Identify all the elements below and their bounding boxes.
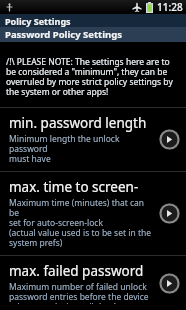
button[interactable]: Policy Settings bbox=[0, 14, 186, 27]
staticText: /!\ PLEASE NOTE: The settings here are t… bbox=[6, 56, 181, 98]
button[interactable]: Open max. time to screen-lock setting bbox=[159, 203, 180, 224]
staticText: Minimum length the unlock password must … bbox=[9, 133, 155, 165]
button[interactable]: Open min. password length setting bbox=[159, 129, 180, 150]
button[interactable]: max. failed password attempts bbox=[0, 256, 186, 310]
staticText: min. password length bbox=[9, 114, 147, 132]
staticText: Password Policy Settings bbox=[5, 28, 122, 41]
staticText: max. time to screen-lock bbox=[9, 178, 155, 196]
button[interactable]: max. time to screen-lock bbox=[0, 172, 186, 255]
staticText: Policy Settings bbox=[5, 15, 71, 27]
button[interactable]: min. password length bbox=[0, 108, 186, 171]
staticText: Maximum time (minutes) that can be set f… bbox=[9, 197, 155, 249]
staticText: max. failed password attempts bbox=[9, 262, 155, 280]
button[interactable]: Open max. failed password attempts setti… bbox=[159, 273, 180, 294]
staticText: Maximum number of failed unlock password… bbox=[9, 281, 149, 304]
staticText: 11:28 bbox=[157, 0, 183, 14]
